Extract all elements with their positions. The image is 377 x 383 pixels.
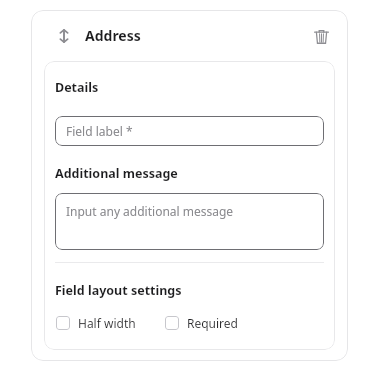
staticText: Additional message bbox=[55, 165, 178, 182]
button[interactable]: Field label * bbox=[55, 116, 324, 146]
button[interactable]: Half width bbox=[55, 313, 137, 333]
staticText: Half width bbox=[78, 315, 136, 331]
button[interactable]: Reorder bbox=[53, 25, 75, 47]
staticText: Field layout settings bbox=[55, 282, 182, 299]
staticText: Required bbox=[187, 315, 238, 331]
staticText: Address bbox=[85, 26, 141, 45]
button[interactable]: Delete bbox=[308, 23, 334, 49]
staticText: Field label * bbox=[66, 123, 133, 139]
staticText: Input any additional message bbox=[66, 203, 234, 219]
button[interactable]: Required bbox=[164, 313, 239, 333]
button[interactable]: Input any additional message bbox=[55, 193, 324, 250]
staticText: Details bbox=[55, 79, 99, 96]
